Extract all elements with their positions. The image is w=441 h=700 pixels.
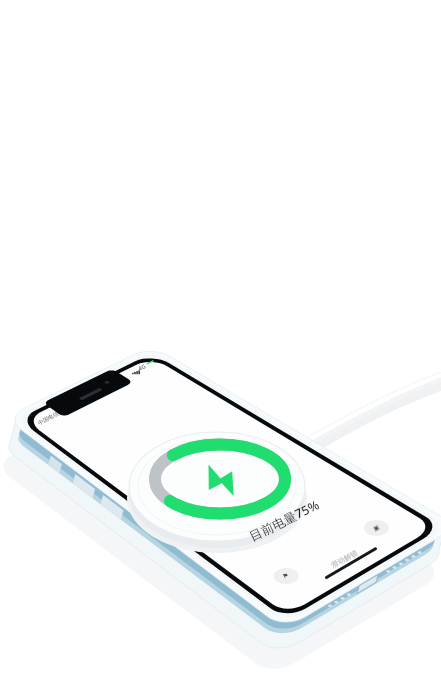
button[interactable] bbox=[0, 0, 441, 700]
